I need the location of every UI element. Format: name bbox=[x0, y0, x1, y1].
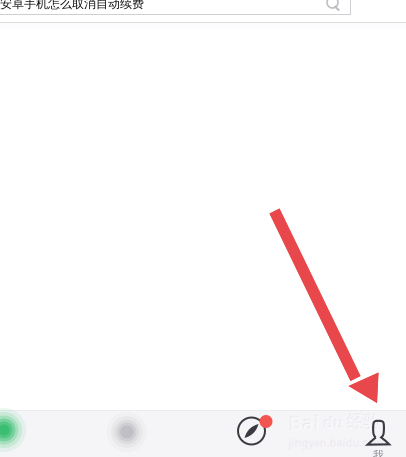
staticText: 经验 bbox=[347, 412, 381, 433]
staticText: 我 bbox=[373, 448, 384, 457]
staticText: du bbox=[324, 412, 344, 433]
button[interactable]: Chats bbox=[0, 407, 27, 453]
staticText: du bbox=[323, 411, 343, 432]
staticText: 安卓手机怎么取消自动续费 bbox=[0, 0, 144, 11]
button[interactable]: Contacts bbox=[106, 411, 148, 453]
button[interactable]: Discover bbox=[236, 416, 266, 446]
staticText: jingyan.baidu.com bbox=[288, 435, 383, 449]
button[interactable]: Me bbox=[364, 419, 392, 457]
staticText: Bai bbox=[289, 409, 320, 436]
staticText: Bai bbox=[288, 409, 319, 435]
staticText: 经验 bbox=[346, 411, 380, 433]
